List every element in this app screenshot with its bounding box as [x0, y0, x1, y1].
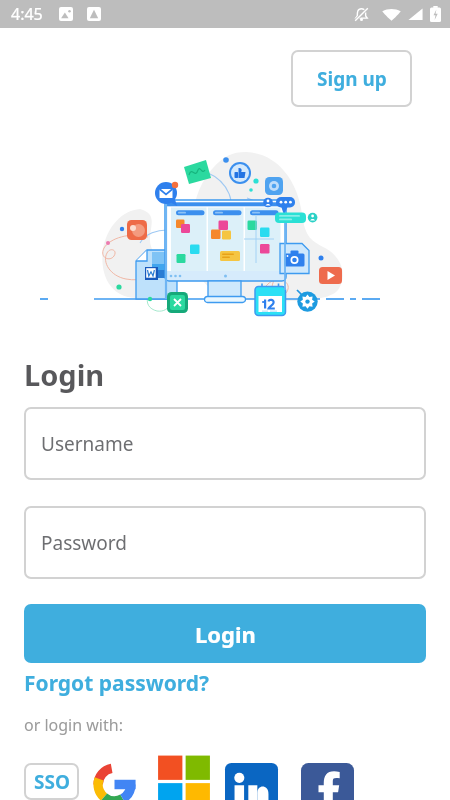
staticText: Password [41, 530, 127, 556]
button[interactable]: Username [24, 407, 426, 480]
staticText: Login [24, 355, 105, 394]
staticText: Username [41, 431, 134, 457]
button[interactable]: Sign in with Microsoft [156, 763, 211, 800]
button[interactable]: Sign in with SSO [24, 763, 79, 800]
staticText: SSO [34, 769, 70, 795]
staticText: Login [195, 619, 256, 649]
staticText: or login with: [24, 714, 123, 736]
button[interactable]: Sign in with Google [87, 763, 142, 800]
button[interactable]: Login [24, 604, 426, 663]
button[interactable]: Sign in with LinkedIn [224, 763, 279, 800]
button[interactable]: Password [24, 506, 426, 579]
button[interactable]: Sign in with Facebook [300, 763, 355, 800]
staticText: 4:45 [11, 3, 43, 25]
button[interactable]: Sign up [291, 50, 412, 107]
staticText: Forgot password? [24, 669, 210, 698]
button[interactable]: Forgot password? [24, 669, 210, 698]
staticText: Sign up [317, 66, 387, 92]
